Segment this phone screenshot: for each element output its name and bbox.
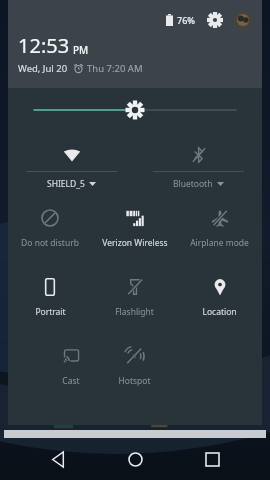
button[interactable]: Verizon Wireless xyxy=(92,196,177,265)
staticText: Portrait xyxy=(35,306,66,318)
staticText: 76% xyxy=(177,14,195,26)
staticText: Flashlight xyxy=(115,306,154,318)
button[interactable]: User profile xyxy=(234,11,252,29)
staticText: Verizon Wireless xyxy=(102,237,168,249)
button[interactable]: Hotspot xyxy=(102,334,166,403)
staticText: Wed, Jul 20 xyxy=(18,62,68,75)
staticText: Bluetooth xyxy=(173,178,213,190)
staticText: SHIELD_5 xyxy=(47,178,85,190)
button[interactable]: Portrait xyxy=(8,265,92,334)
staticText: Hotspot xyxy=(118,375,151,387)
button[interactable]: Bluetooth xyxy=(135,138,262,196)
button[interactable]: Location xyxy=(177,265,262,334)
button[interactable]: Back xyxy=(39,440,77,478)
button[interactable]: Do not disturb xyxy=(8,196,92,265)
button[interactable]: Cast xyxy=(39,334,102,403)
staticText: 12:53 xyxy=(18,32,70,59)
button[interactable]: Home xyxy=(116,440,154,478)
staticText: PM xyxy=(73,43,89,57)
staticText: Thu 7:20 AM xyxy=(87,62,143,75)
staticText: Airplane mode xyxy=(190,237,249,249)
staticText: Cast xyxy=(62,375,80,387)
staticText: Location xyxy=(202,306,237,318)
button[interactable]: Brightness xyxy=(8,88,262,132)
button[interactable]: Settings xyxy=(205,10,225,30)
staticText: Do not disturb xyxy=(21,237,79,249)
button[interactable]: SHIELD_5 xyxy=(8,138,135,196)
button[interactable]: Airplane mode xyxy=(177,196,262,265)
button[interactable]: Recents xyxy=(193,440,231,478)
button[interactable]: Flashlight xyxy=(92,265,177,334)
